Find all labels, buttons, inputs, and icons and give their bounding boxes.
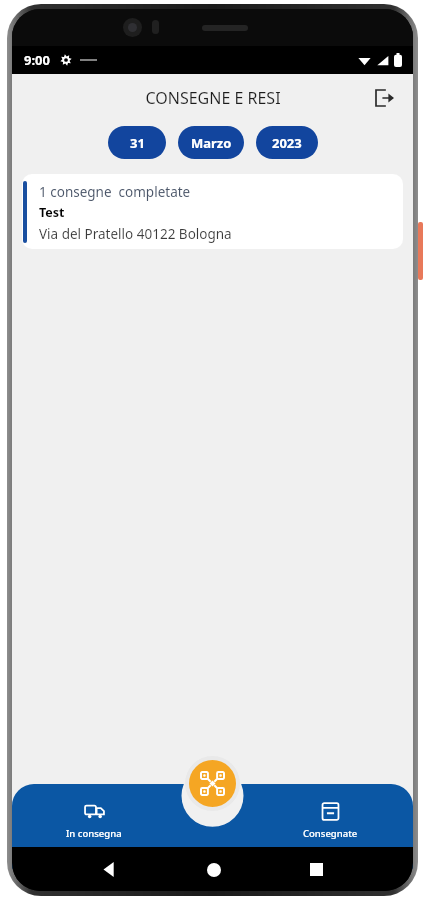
staticText: Test [39,204,65,221]
staticText: Marzo [191,134,232,152]
staticText: 9:00 [24,51,50,69]
staticText: Consegnate [303,827,358,840]
button[interactable]: Logout [369,83,399,113]
button[interactable]: Scan QR code [189,760,236,807]
staticText: 31 [130,134,145,152]
staticText: In consegna [66,827,122,840]
button[interactable]: 2023 [256,126,318,159]
staticText: Via del Pratello 40122 Bologna [39,225,232,243]
button[interactable]: 1 consegne completate [22,174,403,249]
button[interactable]: In consegna [12,791,176,840]
staticText: 2023 [272,134,302,152]
button[interactable]: Marzo [178,126,244,159]
staticText: 1 consegne completate [39,183,191,201]
button[interactable]: Consegnate [248,791,413,840]
staticText: CONSEGNE E RESI [145,87,281,109]
button[interactable]: 31 [108,126,166,159]
